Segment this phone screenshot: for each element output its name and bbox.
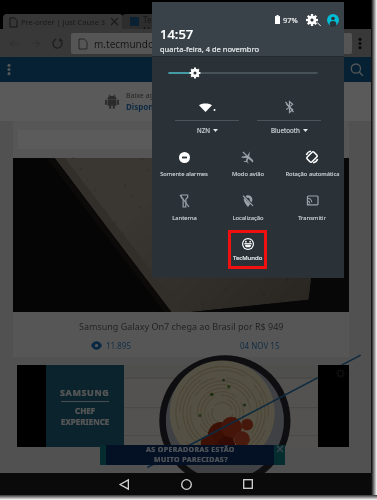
button[interactable]: Bluetooth <box>248 100 330 134</box>
button[interactable]: Pre-order | Just Cause 3 <box>3 14 123 29</box>
button[interactable]: Rotação automática <box>280 150 344 178</box>
button[interactable]: Home <box>155 473 217 495</box>
button[interactable]: Reload <box>52 38 63 49</box>
staticText: CHEF <box>75 405 96 416</box>
button[interactable]: Recents <box>217 473 279 495</box>
button[interactable]: Settings <box>306 14 318 26</box>
staticText: 11.895 <box>106 340 132 351</box>
staticText: Rotação automática <box>285 170 340 178</box>
staticText: TecMundo <box>233 254 263 262</box>
button[interactable]: TecMundo <box>122 14 162 29</box>
button[interactable]: More options <box>358 37 362 50</box>
staticText: Transmitir <box>298 214 326 222</box>
staticText: Lanterna <box>172 214 197 222</box>
staticText: Baixe agora o app <box>126 91 186 101</box>
staticText: Samsung Galaxy On7 chega ao Brasil por R… <box>79 320 284 332</box>
button[interactable]: Back <box>93 473 155 495</box>
staticText: NZN <box>197 126 210 134</box>
staticText: EXPERIENCE <box>61 416 110 427</box>
button[interactable]: NZN <box>166 100 248 134</box>
staticText: SAMSUNG <box>60 386 110 398</box>
button[interactable]: Somente alarmes <box>152 150 216 178</box>
button[interactable]: Transmitir <box>280 194 344 222</box>
staticText: Somente alarmes <box>160 170 208 178</box>
button[interactable]: AS OPERADORAS ESTÃO <box>100 445 285 465</box>
staticText: m.tecmundo.com.br <box>94 37 190 51</box>
staticText: MUITO PARECIDAS? <box>154 455 228 465</box>
button[interactable]: Localização <box>216 194 280 222</box>
button[interactable]: Search <box>350 63 364 77</box>
staticText: Bluetooth <box>271 126 300 134</box>
button[interactable]: User profile <box>327 14 339 26</box>
button[interactable]: TecMundo <box>231 233 264 266</box>
staticText: Localização <box>232 214 264 222</box>
staticText: 14:57 <box>160 25 194 43</box>
staticText: Disponível na Play Store <box>126 101 222 112</box>
staticText: 04 NOV 15 <box>240 340 280 351</box>
staticText: TecMundo <box>143 14 162 29</box>
button[interactable]: Lanterna <box>152 194 216 222</box>
staticText: 97% <box>283 15 298 25</box>
button[interactable]: More options <box>7 63 11 76</box>
button[interactable]: Modo avião <box>216 150 280 178</box>
staticText: quarta-feira, 4 de novembro <box>160 44 259 54</box>
staticText: Modo avião <box>232 170 264 178</box>
staticText: Pre-order | Just Cause 3 <box>21 17 106 27</box>
staticText: AS OPERADORAS ESTÃO <box>146 445 235 455</box>
